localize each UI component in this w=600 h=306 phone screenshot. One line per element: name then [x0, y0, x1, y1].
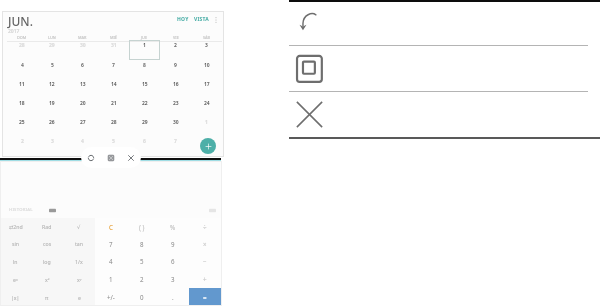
button[interactable]: 28: [7, 40, 37, 60]
button[interactable]: Delete: [209, 207, 216, 214]
button[interactable]: 18: [7, 98, 37, 117]
button[interactable]: 7: [98, 60, 129, 79]
button[interactable]: 8: [129, 60, 160, 79]
button[interactable]: 15: [129, 79, 160, 98]
button[interactable]: 26: [37, 117, 67, 136]
button[interactable]: tan: [63, 235, 95, 252]
button[interactable]: .: [157, 288, 189, 306]
button[interactable]: x²: [31, 270, 63, 288]
button[interactable]: 2: [126, 270, 157, 288]
button[interactable]: 29: [129, 117, 160, 136]
button[interactable]: 13: [67, 79, 98, 98]
staticText: 6: [143, 138, 146, 145]
button[interactable]: Add event: [200, 138, 216, 154]
button[interactable]: More options: [210, 14, 221, 25]
button[interactable]: HOY: [176, 13, 190, 26]
button[interactable]: 6: [157, 252, 189, 270]
button[interactable]: 16: [160, 79, 191, 98]
button[interactable]: +: [189, 270, 221, 288]
staticText: 25: [19, 119, 25, 126]
button[interactable]: 9: [157, 235, 189, 252]
button[interactable]: 27: [67, 117, 98, 136]
button[interactable]: 24: [191, 98, 222, 117]
button[interactable]: e: [63, 288, 95, 306]
button[interactable]: =: [189, 288, 221, 306]
button[interactable]: Save: [101, 147, 121, 168]
button[interactable]: 23: [160, 98, 191, 117]
button[interactable]: |x|: [0, 288, 31, 306]
button[interactable]: 2: [160, 40, 191, 60]
button[interactable]: Home: [289, 46, 600, 91]
button[interactable]: 20: [67, 98, 98, 117]
button[interactable]: xʸ: [63, 270, 95, 288]
button[interactable]: 12: [37, 79, 67, 98]
button[interactable]: Rad: [31, 218, 63, 235]
button[interactable]: HISTORIAL: [9, 207, 33, 213]
staticText: 8: [205, 138, 208, 145]
button[interactable]: 31: [98, 40, 129, 60]
button[interactable]: 11: [7, 79, 37, 98]
button[interactable]: VISTA: [193, 13, 210, 26]
button[interactable]: 28: [98, 117, 129, 136]
button[interactable]: sin: [0, 235, 31, 252]
button[interactable]: 3: [157, 270, 189, 288]
button[interactable]: ÷: [189, 218, 221, 235]
button[interactable]: √: [63, 218, 95, 235]
button[interactable]: Back: [289, 2, 600, 45]
staticText: ( ): [139, 223, 145, 231]
button[interactable]: 29: [37, 40, 67, 60]
button[interactable]: 14: [98, 79, 129, 98]
button[interactable]: 25: [7, 117, 37, 136]
button[interactable]: 30: [67, 40, 98, 60]
button[interactable]: 1: [129, 40, 160, 60]
staticText: e: [78, 294, 81, 301]
button[interactable]: 5: [37, 60, 67, 79]
button[interactable]: 22: [129, 98, 160, 117]
button[interactable]: C: [95, 218, 126, 235]
staticText: 6: [81, 62, 84, 69]
button[interactable]: 4: [7, 60, 37, 79]
button[interactable]: 1: [95, 270, 126, 288]
button[interactable]: cos: [31, 235, 63, 252]
button[interactable]: 7: [95, 235, 126, 252]
button[interactable]: log: [31, 252, 63, 270]
button[interactable]: 8: [191, 136, 222, 155]
staticText: 19: [49, 100, 55, 107]
button[interactable]: eˣ: [0, 270, 31, 288]
staticText: %: [170, 223, 176, 231]
staticText: 1: [143, 42, 146, 49]
button[interactable]: 6: [129, 136, 160, 155]
button[interactable]: %: [157, 218, 189, 235]
button[interactable]: 8: [126, 235, 157, 252]
button[interactable]: +/-: [95, 288, 126, 306]
button[interactable]: 21: [98, 98, 129, 117]
button[interactable]: ( ): [126, 218, 157, 235]
button[interactable]: Close: [289, 92, 600, 137]
button[interactable]: 0: [126, 288, 157, 306]
button[interactable]: 4: [95, 252, 126, 270]
button[interactable]: 19: [37, 98, 67, 117]
button[interactable]: 30: [160, 117, 191, 136]
button[interactable]: ×: [189, 235, 221, 252]
button[interactable]: 9: [160, 60, 191, 79]
button[interactable]: 1/x: [63, 252, 95, 270]
button[interactable]: Close: [121, 147, 141, 168]
button[interactable]: 10: [191, 60, 222, 79]
button[interactable]: 4: [67, 136, 98, 155]
staticText: 16: [173, 81, 179, 88]
button[interactable]: Keypad: [49, 207, 56, 214]
button[interactable]: Rotate: [81, 147, 101, 168]
button[interactable]: ⇄2nd: [0, 218, 31, 235]
button[interactable]: 17: [191, 79, 222, 98]
button[interactable]: 5: [126, 252, 157, 270]
button[interactable]: ln: [0, 252, 31, 270]
button[interactable]: 5: [98, 136, 129, 155]
button[interactable]: 6: [67, 60, 98, 79]
button[interactable]: 3: [191, 40, 222, 60]
button[interactable]: π: [31, 288, 63, 306]
